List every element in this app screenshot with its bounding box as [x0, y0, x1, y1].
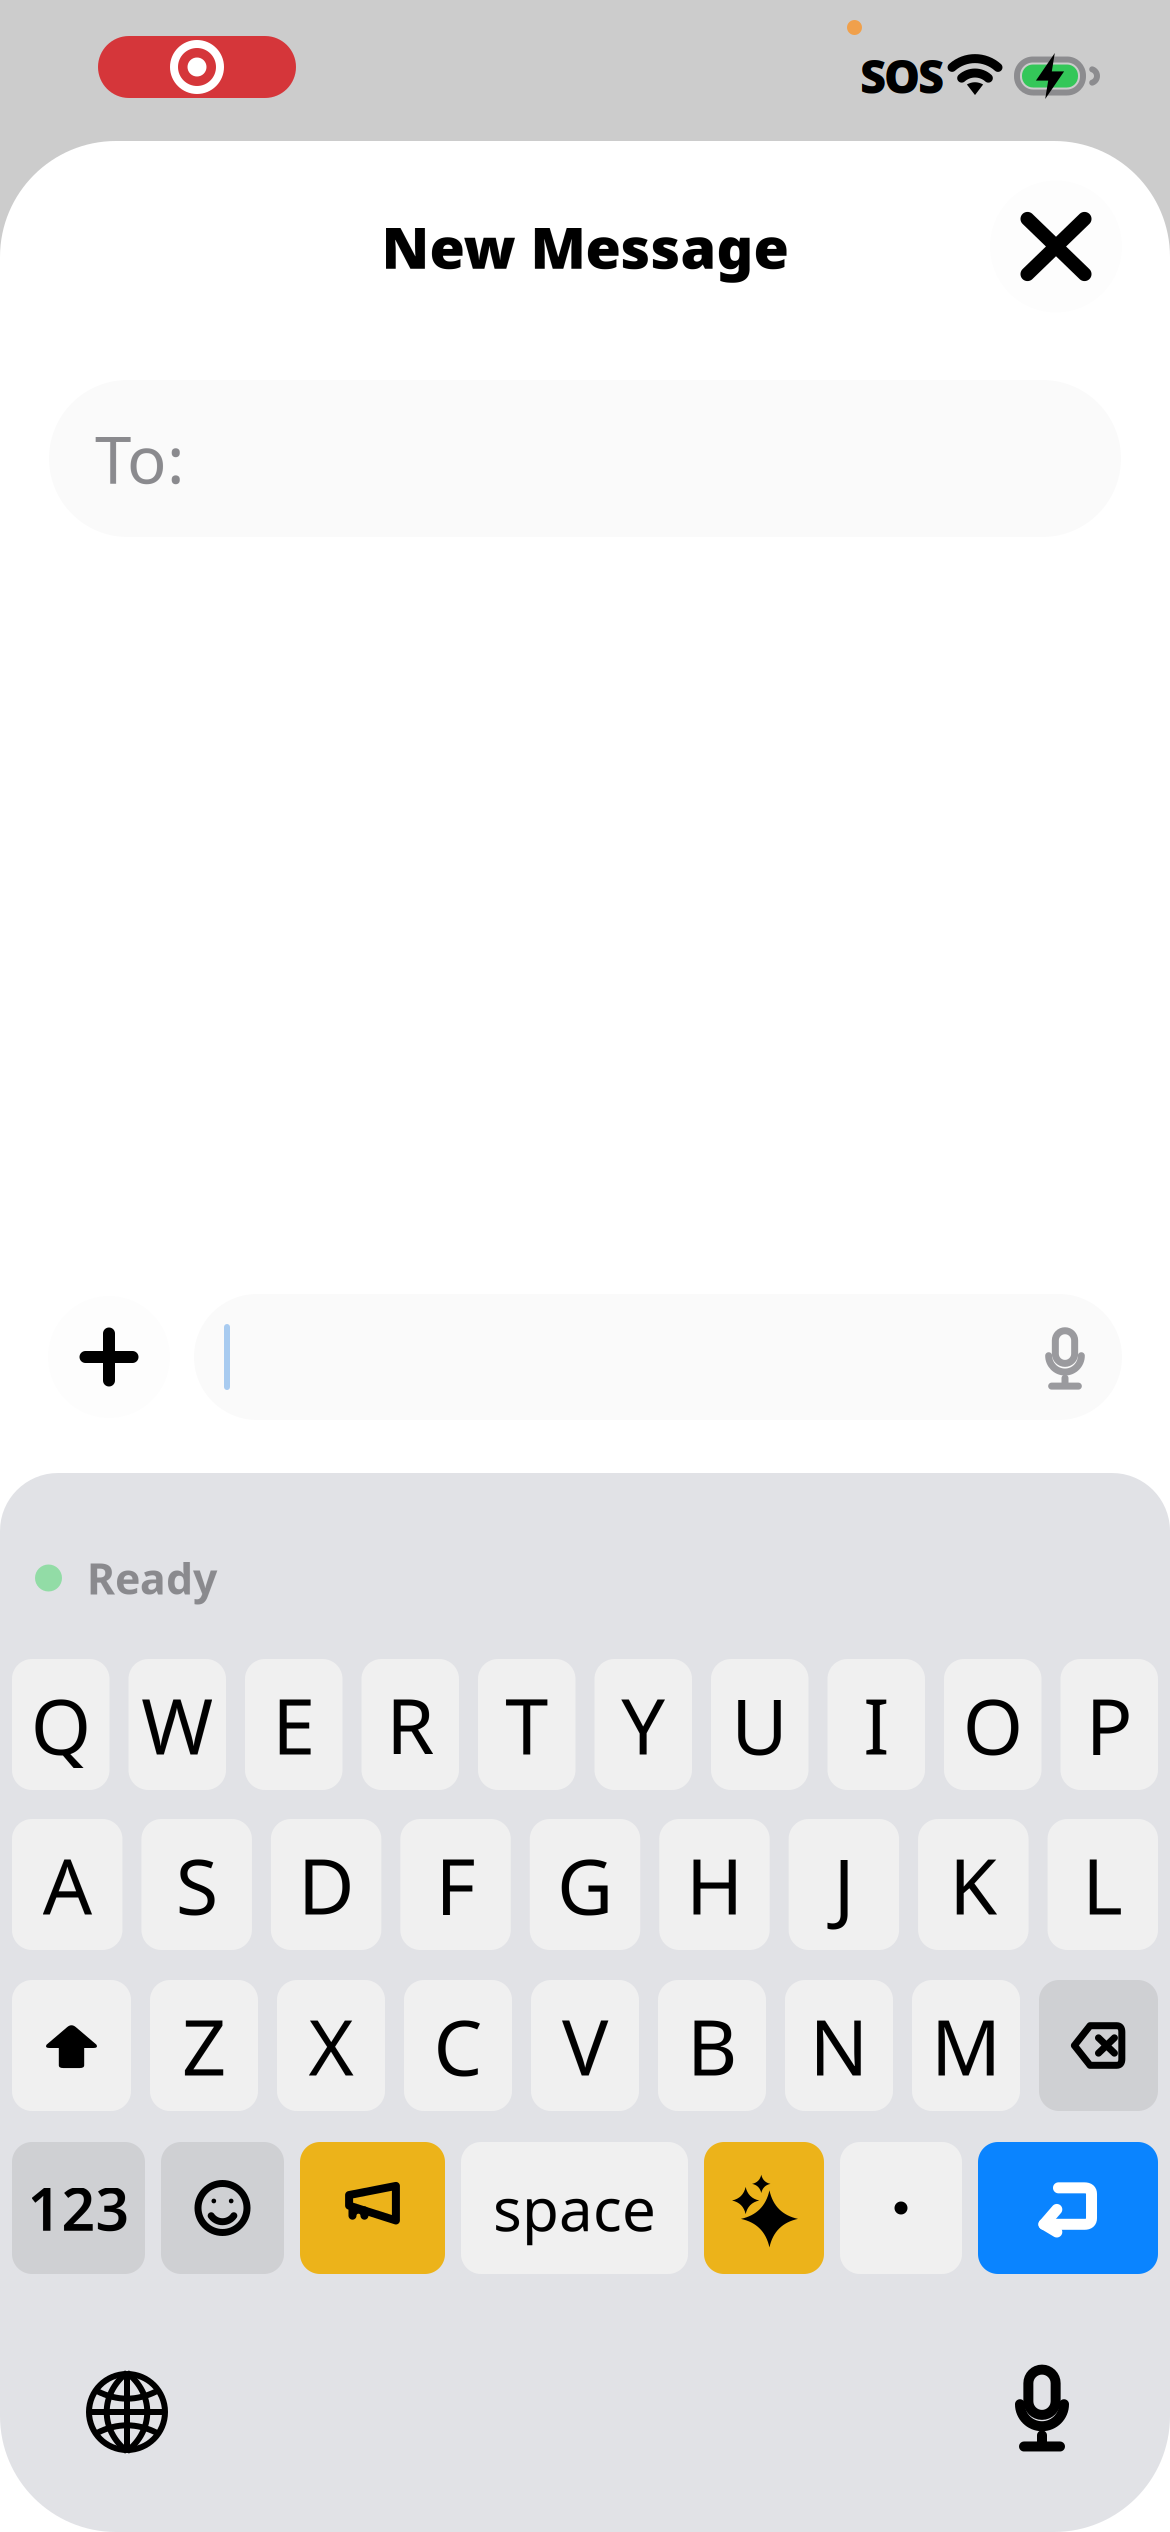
staticText: R — [386, 1673, 434, 1776]
staticText: S — [176, 1833, 218, 1936]
button[interactable]: H — [659, 1819, 770, 1950]
staticText: To: — [95, 415, 185, 502]
staticText: H — [686, 1833, 743, 1936]
button[interactable]: V — [531, 1980, 639, 2111]
staticText: Q — [31, 1673, 91, 1776]
button[interactable]: J — [789, 1819, 899, 1950]
staticText: N — [809, 1994, 868, 2097]
button[interactable]: S — [141, 1819, 252, 1950]
staticText: P — [1086, 1673, 1133, 1776]
staticText: X — [308, 1994, 353, 2097]
button[interactable]: U — [711, 1659, 808, 1790]
staticText: O — [963, 1673, 1023, 1776]
staticText: V — [562, 1994, 608, 2097]
button[interactable]: F — [400, 1819, 511, 1950]
staticText: W — [141, 1673, 213, 1776]
button[interactable]: Q — [12, 1659, 109, 1790]
button[interactable]: O — [944, 1659, 1041, 1790]
staticText: G — [557, 1833, 613, 1936]
staticText: I — [863, 1673, 889, 1776]
button[interactable]: Delete — [1039, 1980, 1158, 2111]
button[interactable]: Emoji — [161, 2142, 284, 2274]
staticText: F — [436, 1833, 476, 1936]
button[interactable]: E — [245, 1659, 342, 1790]
button[interactable]: W — [128, 1659, 226, 1790]
staticText: J — [833, 1833, 854, 1936]
button[interactable]: D — [271, 1819, 381, 1950]
staticText: Y — [621, 1673, 665, 1776]
staticText: A — [43, 1833, 92, 1936]
staticText: E — [272, 1673, 315, 1776]
staticText: K — [949, 1833, 997, 1936]
staticText: D — [298, 1833, 354, 1936]
button[interactable]: P — [1060, 1659, 1158, 1790]
button[interactable]: G — [530, 1819, 640, 1950]
button[interactable]: C — [404, 1980, 512, 2111]
button[interactable]: L — [1048, 1819, 1158, 1950]
button[interactable]: Shift — [12, 1980, 131, 2111]
staticText: C — [433, 1994, 482, 2097]
button[interactable]: K — [918, 1819, 1028, 1950]
button[interactable]: Announce — [300, 2142, 445, 2274]
button[interactable]: Dictation — [982, 2352, 1102, 2472]
button[interactable]: X — [277, 1980, 385, 2111]
staticText: M — [931, 1994, 1001, 2097]
button[interactable]: B — [658, 1980, 766, 2111]
staticText: T — [505, 1673, 548, 1776]
button[interactable]: Y — [594, 1659, 692, 1790]
staticText: New Message — [381, 208, 788, 284]
button[interactable]: Period — [840, 2142, 962, 2274]
staticText: Z — [182, 1994, 226, 2097]
staticText: Ready — [87, 1550, 217, 1606]
button[interactable]: A — [12, 1819, 122, 1950]
button[interactable]: T — [478, 1659, 575, 1790]
button[interactable]: Add attachment — [48, 1296, 170, 1418]
staticText: L — [1082, 1833, 1123, 1936]
button[interactable]: Z — [150, 1980, 258, 2111]
button[interactable]: N — [785, 1980, 893, 2111]
staticText: B — [687, 1994, 737, 2097]
button[interactable]: Numbers — [12, 2142, 145, 2274]
button[interactable]: I — [827, 1659, 925, 1790]
button[interactable]: space — [461, 2142, 688, 2274]
button[interactable]: Recording indicator — [98, 36, 296, 98]
staticText: SOS — [860, 46, 944, 106]
staticText: space — [493, 2168, 656, 2248]
button[interactable]: M — [912, 1980, 1020, 2111]
staticText: 123 — [27, 2169, 129, 2247]
button[interactable]: Close — [990, 180, 1122, 312]
button[interactable]: Next keyboard — [67, 2352, 187, 2472]
button[interactable]: Sparkle — [704, 2142, 824, 2274]
button[interactable]: R — [361, 1659, 459, 1790]
staticText: U — [731, 1673, 788, 1776]
button[interactable]: Return — [978, 2142, 1158, 2274]
